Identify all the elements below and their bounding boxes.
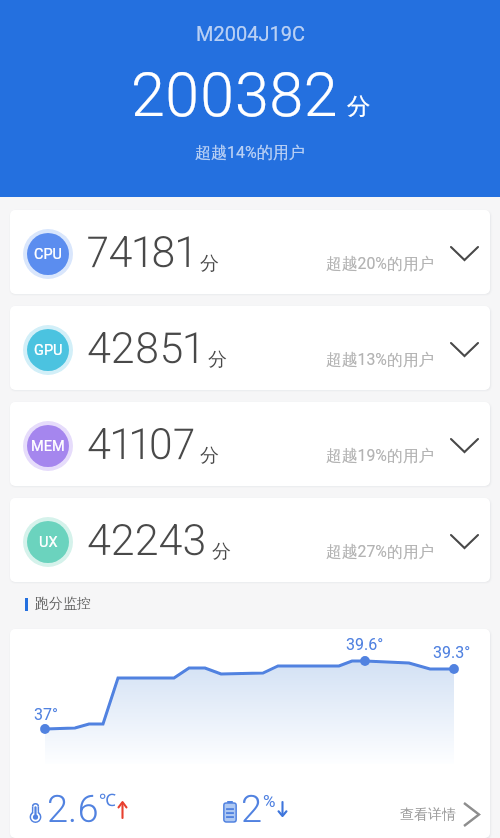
staticText: 74181 bbox=[87, 227, 195, 277]
staticText: 2.6 bbox=[47, 787, 99, 832]
staticText: 分 bbox=[212, 540, 231, 564]
staticText: M2004J19C bbox=[196, 22, 305, 45]
staticText: 分 bbox=[347, 92, 370, 121]
staticText: MEM bbox=[31, 438, 65, 455]
staticText: ℃ bbox=[99, 788, 116, 811]
staticText: 41107 bbox=[87, 419, 195, 469]
button[interactable]: GPU bbox=[10, 306, 490, 390]
staticText: 2 bbox=[241, 787, 263, 832]
staticText: 37° bbox=[34, 705, 58, 724]
staticText: CPU bbox=[34, 246, 62, 263]
staticText: 超越13%的用户 bbox=[326, 350, 435, 370]
staticText: GPU bbox=[34, 342, 63, 359]
staticText: 分 bbox=[200, 444, 219, 468]
staticText: 分 bbox=[208, 348, 227, 372]
staticText: 超越20%的用户 bbox=[326, 254, 435, 274]
button[interactable]: MEM bbox=[10, 402, 490, 486]
staticText: 42851 bbox=[87, 323, 203, 373]
button[interactable]: CPU bbox=[10, 210, 490, 294]
staticText: 跑分监控 bbox=[35, 595, 91, 613]
staticText: 39.6° bbox=[346, 635, 384, 654]
staticText: UX bbox=[39, 534, 58, 551]
button[interactable]: 查看详情 bbox=[400, 803, 479, 826]
staticText: 200382 bbox=[131, 59, 338, 130]
staticText: 42243 bbox=[87, 515, 207, 565]
staticText: % bbox=[263, 791, 276, 811]
staticText: 分 bbox=[200, 252, 219, 276]
staticText: 39.3° bbox=[433, 643, 471, 662]
staticText: 超越27%的用户 bbox=[326, 542, 435, 562]
staticText: 超越14%的用户 bbox=[195, 143, 305, 163]
staticText: 超越19%的用户 bbox=[326, 446, 435, 466]
button[interactable]: UX bbox=[10, 498, 490, 582]
staticText: 查看详情 bbox=[400, 806, 456, 824]
